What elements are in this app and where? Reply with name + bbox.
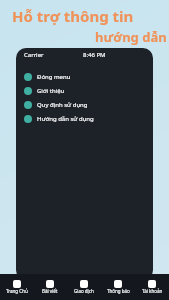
staticText: Giới thiệu [37, 87, 65, 95]
staticText: Carrier [24, 51, 44, 59]
button[interactable]: Đóng menu [24, 70, 153, 84]
staticText: 8:46 PM [83, 51, 106, 59]
staticText: Giao dịch [74, 288, 94, 294]
button[interactable]: Thông báo [101, 280, 135, 294]
staticText: Thông báo [107, 288, 130, 294]
button[interactable]: Quy định sử dụng [24, 98, 153, 112]
button[interactable]: Hướng dẫn sử dụng [24, 112, 153, 126]
button[interactable]: Bài viết [33, 280, 67, 294]
button[interactable]: Tài khoản [135, 280, 169, 294]
button[interactable]: Giới thiệu [24, 84, 153, 98]
staticText: Hướng dẫn sử dụng [37, 115, 94, 123]
staticText: Tài khoản [142, 288, 163, 294]
staticText: hướng dẫn [95, 28, 167, 46]
button[interactable]: Trang Chủ [0, 280, 33, 294]
staticText: Bài viết [42, 288, 58, 294]
staticText: Trang Chủ [6, 288, 28, 294]
button[interactable]: Giao dịch [67, 280, 101, 294]
staticText: Hỗ trợ thông tin [12, 6, 134, 26]
staticText: Quy định sử dụng [37, 101, 88, 109]
staticText: Đóng menu [37, 73, 71, 81]
